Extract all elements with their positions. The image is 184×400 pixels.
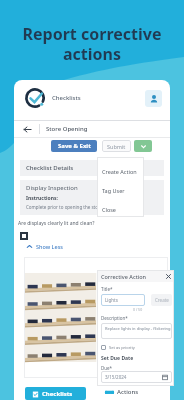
- staticText: Actions: [117, 388, 139, 396]
- staticText: Description*: [101, 315, 128, 321]
- staticText: Set Due Date: [101, 355, 134, 362]
- button[interactable]: More actions: [134, 140, 152, 152]
- button[interactable]: Answer checkbox: [20, 232, 28, 240]
- staticText: Instructions:: [26, 195, 58, 202]
- button[interactable]: Back: [22, 124, 33, 135]
- staticText: Display Inspection: [26, 184, 78, 192]
- button[interactable]: Set as priority: [101, 345, 135, 350]
- button[interactable]: Save & Exit: [51, 140, 97, 152]
- staticText: Due*: [101, 365, 113, 371]
- button[interactable]: Create Action: [97, 164, 144, 179]
- staticText: Report corrective actions: [0, 23, 184, 64]
- button[interactable]: Close dialog: [165, 273, 172, 280]
- staticText: Checklists: [42, 390, 73, 398]
- staticText: Submit: [107, 143, 126, 150]
- staticText: Title*: [101, 286, 113, 292]
- staticText: 3/15/2024: [105, 374, 127, 380]
- button[interactable]: Actions: [105, 388, 139, 396]
- staticText: Checklist Details: [26, 164, 74, 172]
- staticText: Are displays clearly lit and clean?: [18, 220, 95, 227]
- staticText: 0 / 50: [133, 307, 143, 312]
- button[interactable]: Profile: [145, 90, 162, 107]
- staticText: Store Opening: [46, 125, 88, 133]
- staticText: Corrective Action: [101, 273, 147, 280]
- staticText: Complete prior to opening the store: [26, 204, 103, 210]
- button[interactable]: Submit: [102, 140, 131, 152]
- button[interactable]: Close: [97, 202, 144, 217]
- button[interactable]: Show Less: [26, 243, 64, 250]
- staticText: Save & Exit: [58, 142, 91, 150]
- staticText: Checklists: [52, 94, 81, 102]
- button[interactable]: Checklist Details: [20, 160, 164, 176]
- staticText: Create: [155, 297, 169, 303]
- staticText: Close: [102, 206, 116, 213]
- button[interactable]: Checklists: [25, 387, 86, 400]
- staticText: Tag User: [102, 187, 125, 194]
- button[interactable]: Checklists logo: [25, 88, 45, 108]
- staticText: Replace lights in display - flickering: [105, 326, 171, 331]
- staticText: Set as priority: [109, 345, 135, 350]
- button[interactable]: Create: [151, 294, 172, 306]
- staticText: Lights: [105, 297, 118, 303]
- button[interactable]: Tag User: [97, 183, 144, 198]
- staticText: Create Action: [102, 168, 137, 175]
- staticText: Show Less: [36, 243, 64, 250]
